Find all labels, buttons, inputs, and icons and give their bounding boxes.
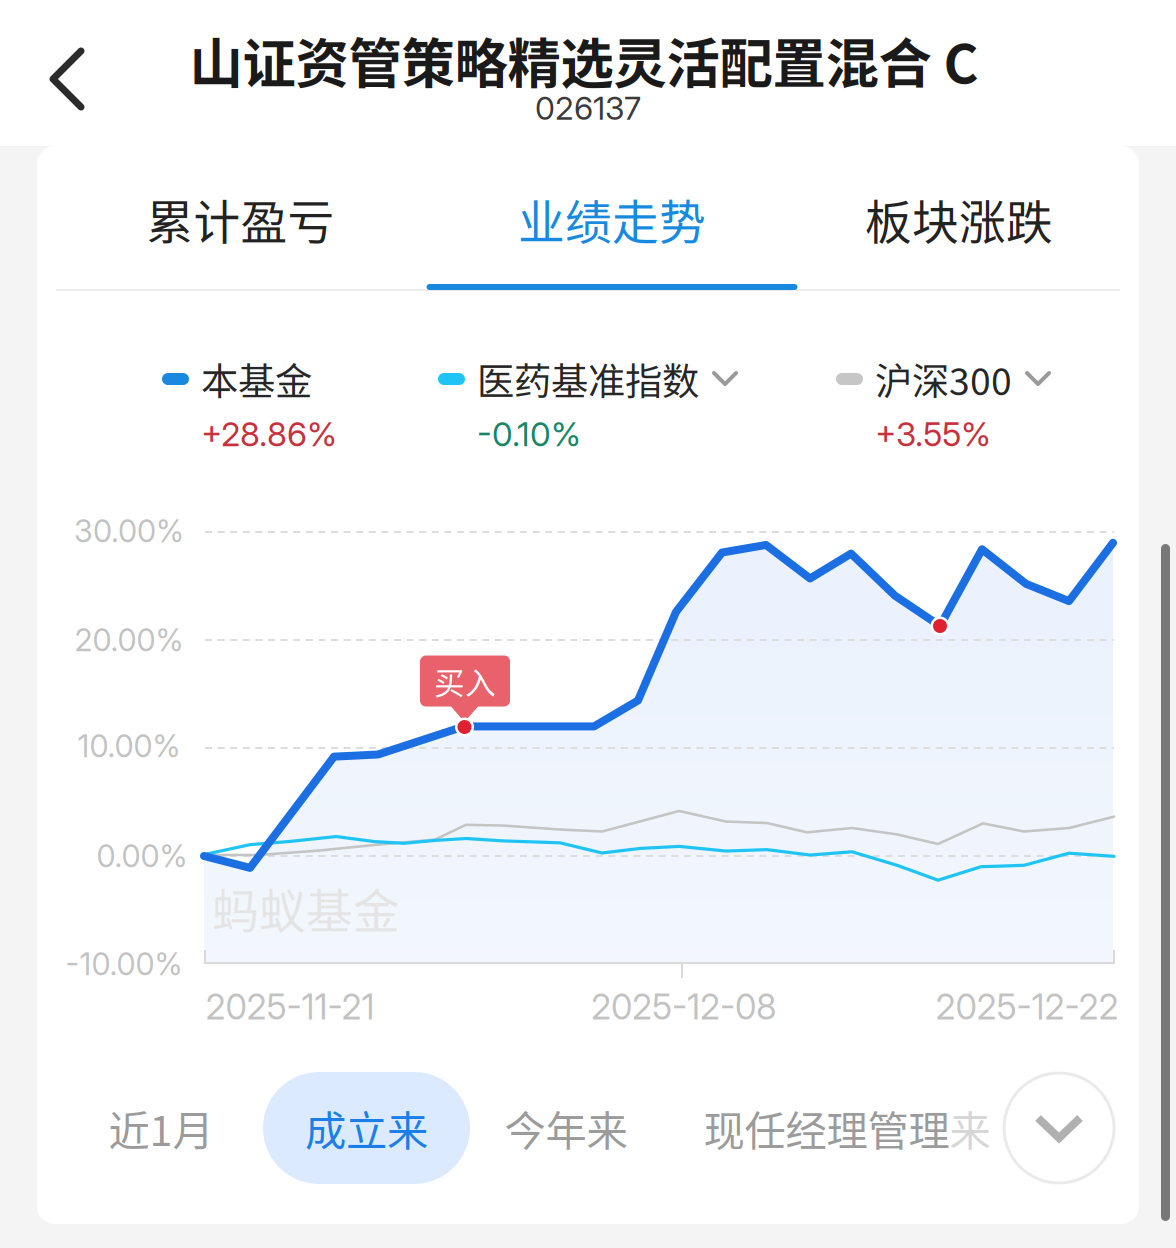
staticText: 蚂蚁基金 [212,874,400,942]
staticText: -10.00% [65,945,182,982]
staticText: 累计盈亏 [146,185,334,253]
button[interactable]: Back [21,20,113,138]
button[interactable]: 近1月 [66,1072,255,1184]
button[interactable]: 今年来 [462,1072,669,1184]
staticText: 20.00% [74,621,183,658]
staticText: 来 [949,1098,990,1158]
staticText: 近1月 [108,1098,213,1158]
staticText: -0.10% [477,414,581,454]
button[interactable]: 现任经理管理 [673,1072,1020,1184]
staticText: 现任经理管理 [703,1098,949,1158]
button[interactable]: 板块涨跌 [773,146,1144,291]
button[interactable]: 医药基准指数 [438,352,738,454]
staticText: 026137 [535,89,641,127]
button[interactable]: 累计盈亏 [55,146,426,291]
staticText: 2025-11-21 [205,986,374,1028]
staticText: +3.55% [875,414,991,454]
staticText: 2025-12-08 [591,986,777,1028]
staticText: 业绩走势 [518,185,706,253]
staticText: 30.00% [74,512,184,549]
button[interactable]: 沪深300 [836,352,1051,454]
staticText: 本基金 [201,352,312,406]
staticText: 2025-12-22 [935,986,1118,1028]
staticText: 板块涨跌 [865,185,1053,253]
staticText: 0.00% [96,837,187,874]
staticText: 成立来 [305,1098,428,1158]
staticText: +28.86% [201,414,337,454]
staticText: 医药基准指数 [477,352,699,406]
button[interactable]: 成立来 [263,1072,470,1184]
staticText: 买入 [434,659,496,703]
staticText: 10.00% [77,727,180,764]
button[interactable]: 本基金 [162,352,337,454]
button[interactable]: Expand [1003,1072,1115,1184]
button[interactable]: 业绩走势 [426,146,797,291]
staticText: 山证资管策略精选灵活配置混合 C [189,21,978,99]
staticText: 沪深300 [875,352,1012,406]
staticText: 今年来 [504,1098,627,1158]
